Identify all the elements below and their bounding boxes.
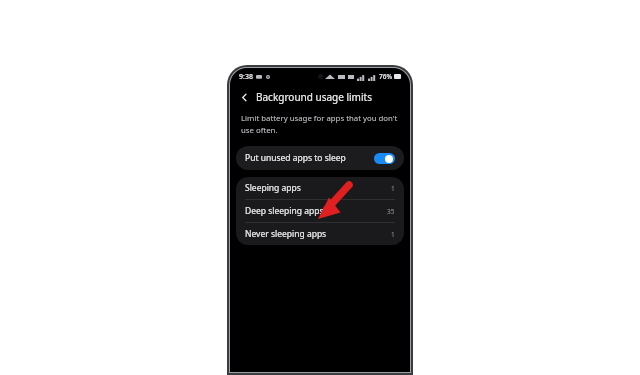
button[interactable]: Back — [236, 89, 252, 105]
button[interactable]: Deep sleeping apps — [236, 200, 404, 222]
staticText: Limit battery usage for apps that you do… — [241, 113, 399, 135]
staticText: Background usage limits — [256, 90, 372, 104]
staticText: 1 — [391, 184, 395, 193]
button[interactable]: Put unused apps to sleep — [236, 146, 404, 170]
staticText: Put unused apps to sleep — [245, 152, 346, 164]
staticText: Sleeping apps — [245, 182, 301, 194]
staticText: Never sleeping apps — [245, 228, 327, 240]
staticText: 35 — [387, 207, 395, 216]
staticText: 76% — [379, 72, 392, 81]
button[interactable]: Sleeping apps — [236, 177, 404, 199]
staticText: 9:38 — [239, 72, 253, 82]
staticText: Deep sleeping apps — [245, 205, 324, 217]
button[interactable]: Never sleeping apps — [236, 223, 404, 245]
staticText: 1 — [391, 230, 395, 239]
